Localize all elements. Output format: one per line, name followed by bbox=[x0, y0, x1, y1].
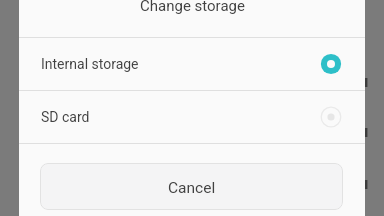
button[interactable]: Cancel bbox=[40, 163, 343, 210]
other: SD card bbox=[320, 106, 342, 128]
other: Internal storage, selected bbox=[320, 53, 342, 75]
staticText: SD card bbox=[41, 109, 90, 125]
staticText: Internal storage bbox=[41, 56, 139, 72]
staticText: Cancel bbox=[168, 179, 216, 197]
staticText: Change storage bbox=[140, 0, 245, 15]
button[interactable]: Internal storage bbox=[19, 38, 365, 90]
button[interactable]: SD card bbox=[19, 91, 365, 143]
